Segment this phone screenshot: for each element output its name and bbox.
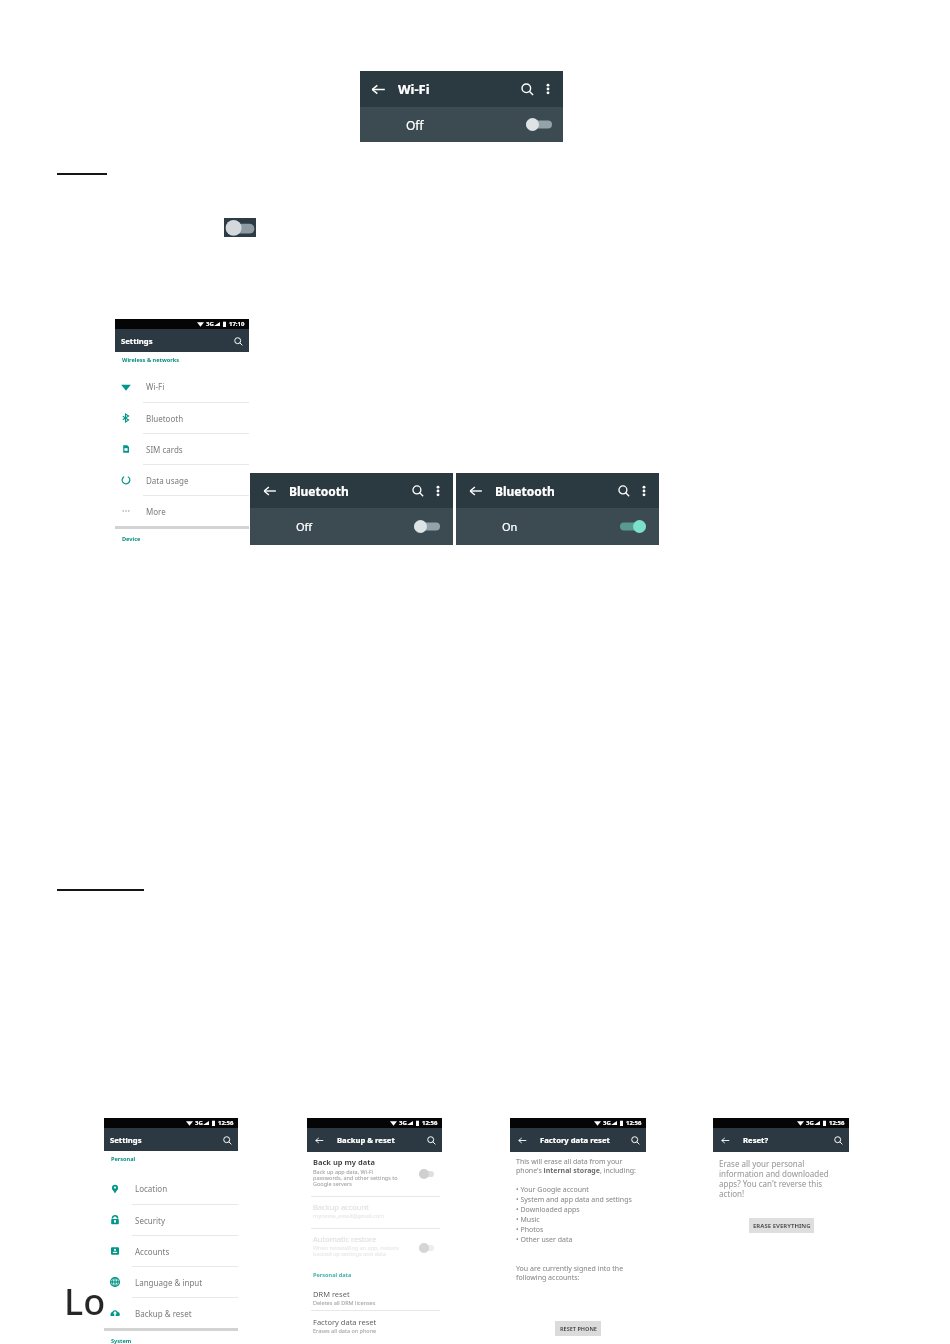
button[interactable]: More options [541,82,555,96]
button[interactable]: More options [431,484,445,498]
button[interactable]: Turn on [526,118,552,131]
button[interactable]: Turn off [620,520,646,533]
staticText: Off [296,519,313,534]
staticText: • Music [516,1215,540,1225]
staticText: Erases all data on phone [313,1327,377,1334]
staticText: Settings [121,336,153,346]
staticText: Reset? [743,1135,769,1145]
staticText: Personal data [313,1271,352,1279]
staticText: • Photos [516,1225,544,1235]
button[interactable]: Back [517,1135,527,1145]
staticText: Device [122,535,141,543]
staticText: 12:56 [829,1119,845,1127]
button[interactable]: Search [220,1133,234,1147]
staticText: Security [135,1215,166,1226]
staticText: 12:56 [626,1119,642,1127]
button[interactable]: Search [518,80,537,99]
staticText: System [111,1337,132,1344]
staticText: Bluetooth [146,413,184,424]
staticText: • System and app data and settings [516,1195,632,1205]
button[interactable]: RESET PHONE [555,1321,601,1336]
button[interactable]: Toggle [224,218,256,237]
staticText: myname_email@gmail.com [313,1212,385,1219]
staticText: Backup & reset [337,1135,395,1145]
staticText: 3G [806,1119,814,1127]
staticText: • Other user data [516,1235,573,1245]
staticText: Location [135,1183,168,1194]
button[interactable]: Accounts [104,1236,238,1267]
staticText: Lo [64,1277,106,1326]
staticText: Personal [111,1155,136,1163]
staticText: On [502,519,518,534]
staticText: • Downloaded apps [516,1205,580,1215]
staticText: 3G [603,1119,611,1127]
staticText: DRM reset [313,1289,350,1299]
staticText: 3G [399,1119,407,1127]
staticText: 3G [206,320,214,328]
staticText: Erase all your personal information and … [719,1158,839,1199]
staticText: 17:10 [229,320,245,328]
button[interactable]: Search [231,334,245,348]
button[interactable]: Search [424,1133,438,1147]
staticText: Off [406,117,424,133]
button[interactable]: Back [314,1135,324,1145]
staticText: 3G [195,1119,203,1127]
staticText: Deletes all DRM licenses [313,1299,376,1306]
button[interactable]: Security [104,1205,238,1236]
staticText: Back up my data [313,1157,376,1167]
button[interactable]: Back [261,482,278,499]
staticText: Factory data reset [313,1317,377,1327]
button[interactable]: Toggle [419,1169,434,1179]
button[interactable]: Turn on [414,520,440,533]
staticText: RESET PHONE [560,1325,597,1332]
staticText: Wi-Fi [146,381,165,392]
button[interactable]: Language & input [104,1267,238,1298]
button[interactable]: Search [628,1133,642,1147]
staticText: Automatic restore [313,1234,377,1244]
staticText: • Your Google account [516,1185,589,1195]
button[interactable]: More [115,496,249,526]
staticText: Settings [110,1135,142,1145]
staticText: Bluetooth [289,483,349,499]
staticText: 12:56 [218,1119,234,1127]
button[interactable]: Back [467,482,484,499]
staticText: Wireless & networks [122,356,180,364]
staticText: Language & input [135,1277,203,1288]
button[interactable]: Search [409,482,427,500]
button[interactable]: Backup & reset [104,1298,238,1328]
staticText: This will erase all data from your phone… [516,1157,642,1175]
button[interactable]: Toggle [419,1243,434,1253]
button[interactable]: Back [369,80,387,98]
button[interactable]: SIM cards [115,434,249,465]
staticText: Back up app data, Wi-Fi passwords, and o… [313,1168,401,1188]
staticText: When reinstalling an app, restore backed… [313,1244,401,1258]
staticText: Wi-Fi [398,80,430,98]
button[interactable]: Search [831,1133,845,1147]
button[interactable]: Location [104,1173,238,1205]
staticText: Bluetooth [495,483,555,499]
staticText: More [146,506,166,517]
staticText: ERASE EVERYTHING [753,1222,811,1230]
button[interactable]: Back [720,1135,730,1145]
button[interactable]: ERASE EVERYTHING [749,1218,814,1233]
staticText: 12:56 [422,1119,438,1127]
staticText: You are currently signed into the follow… [516,1264,642,1282]
staticText: Backup account [313,1202,369,1212]
staticText: Accounts [135,1246,170,1257]
staticText: SIM cards [146,444,183,455]
staticText: Data usage [146,475,189,486]
button[interactable]: Bluetooth [115,403,249,434]
staticText: Backup & reset [135,1308,192,1319]
button[interactable]: Data usage [115,465,249,496]
button[interactable]: More options [637,484,651,498]
button[interactable]: Search [615,482,633,500]
staticText: Factory data reset [540,1135,610,1145]
button[interactable]: Wi-Fi [115,371,249,403]
